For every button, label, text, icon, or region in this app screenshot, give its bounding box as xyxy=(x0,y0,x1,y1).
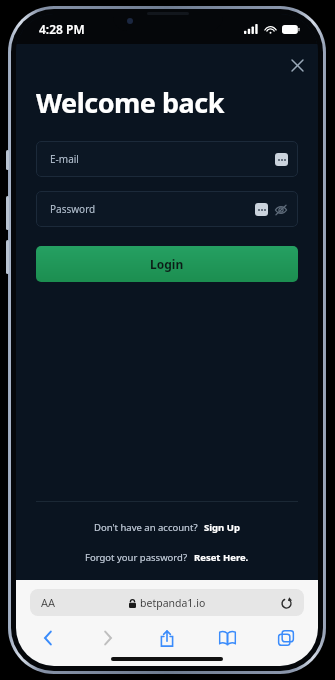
staticText: Reset Here. xyxy=(194,551,249,564)
staticText: Welcome back xyxy=(36,84,224,121)
staticText: AA xyxy=(41,595,56,610)
button[interactable]: Close xyxy=(284,52,310,78)
button[interactable]: Forgot your password? xyxy=(16,551,318,564)
button[interactable]: Share xyxy=(153,624,181,652)
button[interactable]: AA xyxy=(30,589,304,616)
button[interactable]: Reload xyxy=(278,595,294,611)
staticText: Login xyxy=(150,256,184,272)
button[interactable]: Bookmarks xyxy=(213,624,241,652)
button[interactable]: Autofill xyxy=(275,153,288,166)
button[interactable]: Password xyxy=(36,191,298,227)
button[interactable]: Tabs xyxy=(272,624,300,652)
staticText: Forgot your password? xyxy=(85,551,188,564)
staticText: 4:28 PM xyxy=(39,21,85,37)
staticText: E-mail xyxy=(50,152,79,166)
staticText: Don't have an account? xyxy=(94,521,198,534)
staticText: Password xyxy=(50,202,96,216)
button[interactable]: Autofill xyxy=(255,203,268,216)
button[interactable]: Show password xyxy=(273,202,288,217)
button[interactable]: Back xyxy=(34,624,62,652)
button[interactable]: Forward xyxy=(94,624,122,652)
staticText: Sign Up xyxy=(204,521,240,534)
button[interactable]: E-mail xyxy=(36,141,298,177)
button[interactable]: Login xyxy=(36,246,298,282)
button[interactable]: Don't have an account? xyxy=(16,521,318,534)
staticText: betpanda1.io xyxy=(140,596,206,610)
